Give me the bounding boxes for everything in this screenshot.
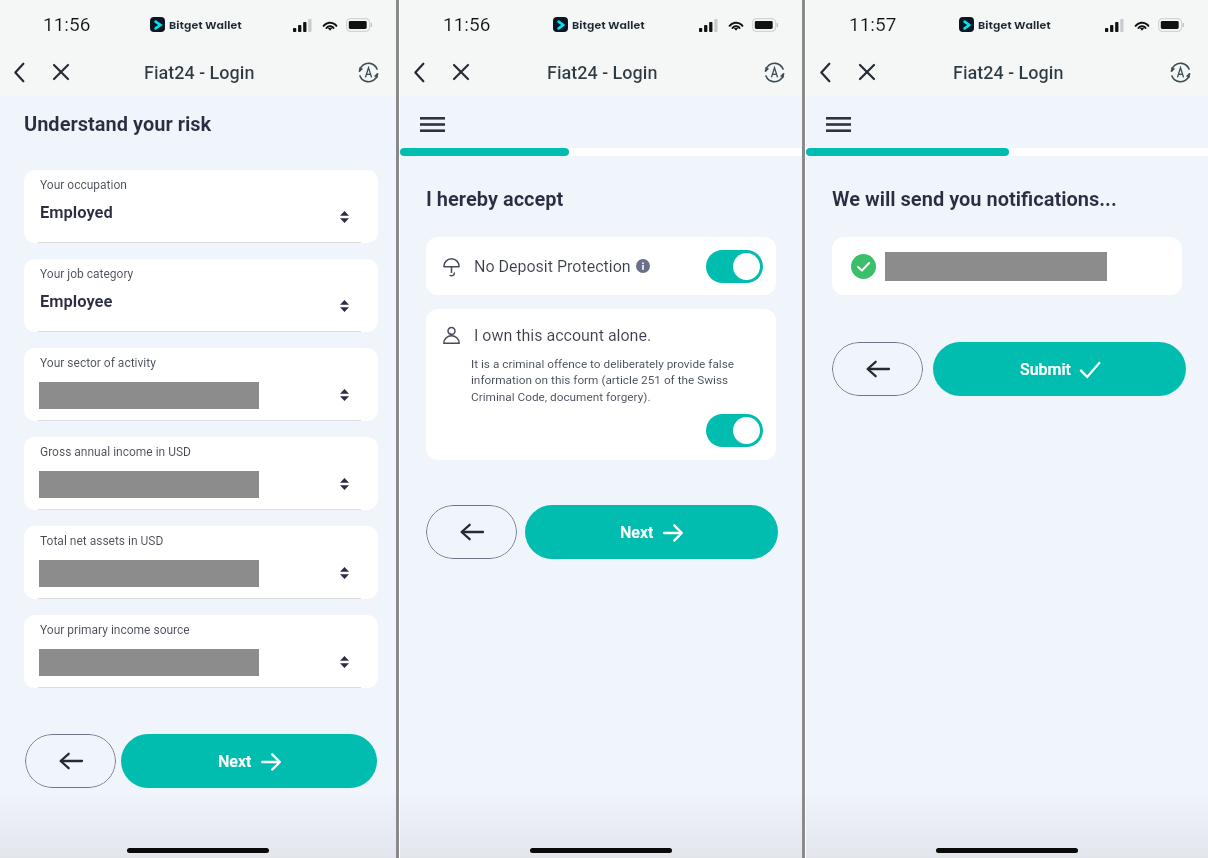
- button[interactable]: Translate: [1164, 56, 1196, 88]
- button[interactable]: Back: [832, 342, 923, 396]
- staticText: 11:57: [849, 13, 897, 35]
- staticText: Fiat24 - Login: [144, 62, 255, 83]
- button[interactable]: Translate: [352, 56, 384, 88]
- button[interactable]: Back: [401, 54, 437, 90]
- staticText: I hereby accept: [426, 187, 564, 210]
- button[interactable]: Back: [25, 734, 116, 788]
- staticText: No Deposit Protection: [474, 257, 631, 276]
- staticText: Gross annual income in USD: [40, 445, 191, 459]
- staticText: Bitget Wallet: [169, 17, 242, 32]
- staticText: Fiat24 - Login: [953, 62, 1064, 83]
- staticText: Next: [218, 752, 252, 771]
- staticText: 11:56: [43, 13, 91, 35]
- button[interactable]: [24, 526, 378, 599]
- button[interactable]: [24, 437, 378, 510]
- staticText: Your sector of activity: [40, 356, 156, 370]
- button[interactable]: Submit: [933, 342, 1186, 396]
- button[interactable]: Next: [525, 505, 778, 559]
- staticText: I own this account alone.: [474, 326, 652, 345]
- staticText: Your primary income source: [40, 623, 190, 637]
- staticText: Employed: [40, 203, 113, 222]
- button[interactable]: I own this account alone.: [426, 309, 776, 460]
- button[interactable]: Toggle: [706, 414, 763, 447]
- staticText: 11:56: [443, 13, 491, 35]
- button[interactable]: Toggle: [706, 250, 763, 283]
- button[interactable]: Close: [43, 54, 79, 90]
- button[interactable]: Back: [1, 54, 37, 90]
- staticText: Total net assets in USD: [40, 534, 164, 548]
- staticText: Fiat24 - Login: [547, 62, 658, 83]
- staticText: Understand your risk: [24, 112, 212, 135]
- button[interactable]: Menu: [820, 113, 856, 135]
- button[interactable]: Next: [121, 734, 377, 788]
- button[interactable]: Translate: [758, 56, 790, 88]
- button[interactable]: [24, 259, 378, 332]
- button[interactable]: Close: [443, 54, 479, 90]
- staticText: Bitget Wallet: [572, 17, 645, 32]
- button[interactable]: No Deposit Protection: [426, 237, 776, 295]
- button[interactable]: [24, 348, 378, 421]
- button[interactable]: Close: [849, 54, 885, 90]
- staticText: We will send you notifications...: [832, 187, 1117, 210]
- staticText: It is a criminal offence to deliberately…: [471, 357, 735, 404]
- staticText: Your job category: [40, 267, 134, 281]
- button[interactable]: [832, 237, 1182, 295]
- staticText: Submit: [1020, 360, 1071, 379]
- staticText: Next: [620, 523, 654, 542]
- staticText: Employee: [40, 292, 113, 311]
- button[interactable]: Back: [807, 54, 843, 90]
- button[interactable]: [24, 170, 378, 243]
- button[interactable]: Menu: [414, 113, 450, 135]
- button[interactable]: [24, 615, 378, 688]
- staticText: Bitget Wallet: [978, 17, 1051, 32]
- staticText: Your occupation: [40, 178, 127, 192]
- button[interactable]: Back: [426, 505, 517, 559]
